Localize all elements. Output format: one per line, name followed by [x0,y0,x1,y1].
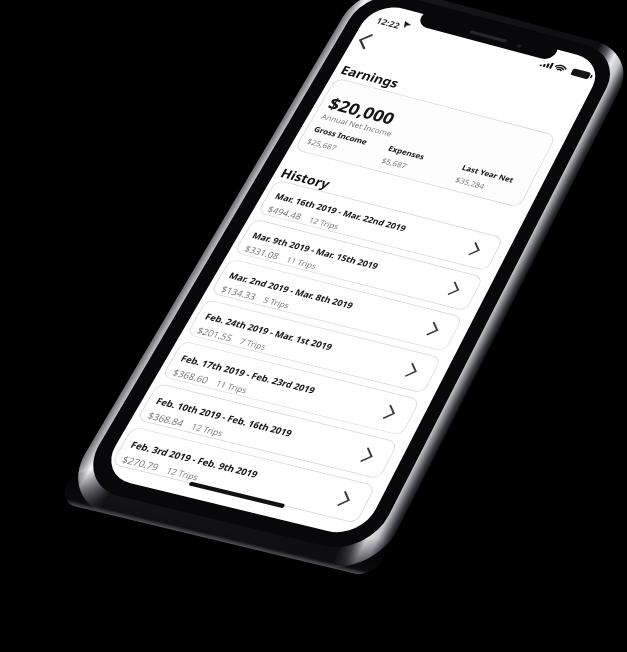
button[interactable]: Earnings screen [0,0,627,652]
